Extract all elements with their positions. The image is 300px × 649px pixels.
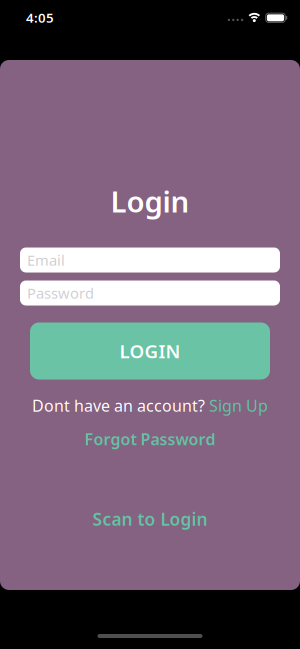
staticText: 4:05	[26, 9, 54, 26]
staticText: Password	[27, 283, 94, 303]
button[interactable]: LOGIN	[30, 322, 270, 379]
staticText: Scan to Login	[92, 507, 207, 530]
staticText: Login	[110, 181, 189, 220]
button[interactable]: Scan to Login	[92, 507, 207, 530]
staticText: Dont have an account?	[32, 395, 205, 416]
button[interactable]: Sign Up	[209, 395, 268, 416]
staticText: Sign Up	[209, 395, 268, 416]
button[interactable]: Password	[20, 280, 280, 305]
staticText: Forgot Password	[84, 428, 215, 450]
staticText: Email	[27, 250, 65, 270]
staticText: LOGIN	[119, 339, 180, 363]
button[interactable]: Forgot Password	[84, 428, 215, 450]
button[interactable]: Email	[20, 247, 280, 272]
